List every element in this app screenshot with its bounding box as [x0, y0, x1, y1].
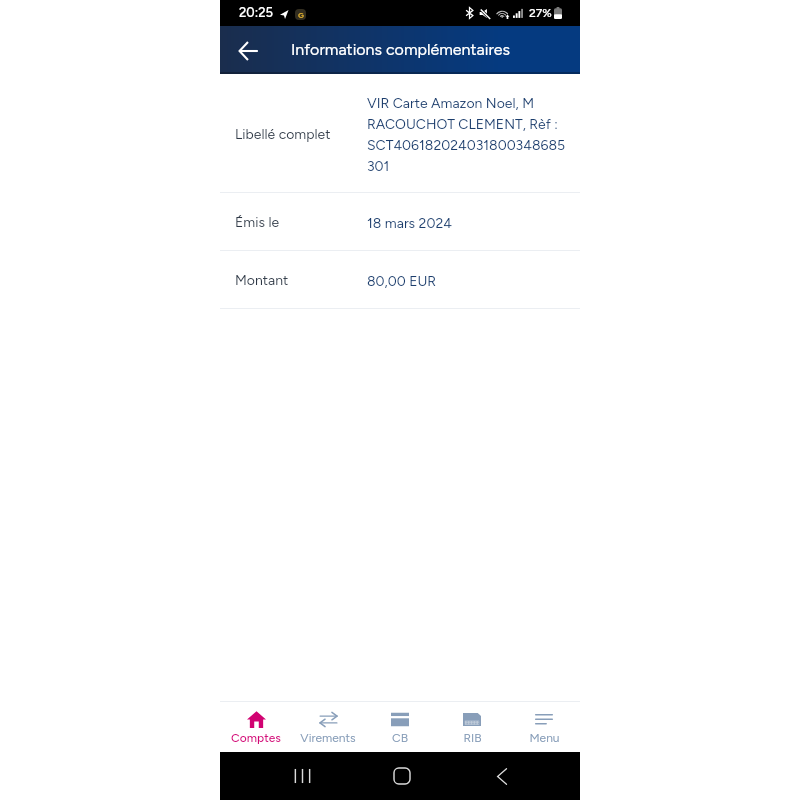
button[interactable]: Comptes: [220, 702, 292, 752]
staticText: Comptes: [231, 731, 281, 745]
button[interactable]: Retour: [452, 752, 552, 800]
staticText: 20:25: [239, 5, 273, 21]
staticText: 301: [367, 158, 390, 175]
button[interactable]: Montant: [220, 251, 580, 308]
button[interactable]: CB: [364, 702, 436, 752]
button[interactable]: Virements: [292, 702, 364, 752]
staticText: 80,00 EUR: [367, 273, 437, 290]
staticText: G: [298, 10, 304, 20]
staticText: RIB: [463, 731, 482, 745]
staticText: 18 mars 2024: [367, 215, 452, 232]
button[interactable]: Émis le: [220, 193, 580, 250]
staticText: Virements: [300, 731, 356, 745]
button[interactable]: Menu: [508, 702, 580, 752]
staticText: SCT406182024031800348685: [367, 137, 566, 154]
button[interactable]: Accueil: [352, 752, 452, 800]
button[interactable]: Applications récentes: [252, 752, 352, 800]
button[interactable]: Retour: [228, 30, 268, 70]
staticText: Émis le: [235, 214, 367, 231]
staticText: Libellé complet: [235, 126, 367, 143]
staticText: Informations complémentaires: [291, 40, 510, 59]
staticText: RACOUCHOT CLEMENT, Rèf :: [367, 116, 558, 133]
staticText: Montant: [235, 272, 367, 289]
staticText: Menu: [529, 731, 560, 745]
staticText: CB: [392, 731, 408, 745]
button[interactable]: RIB: [436, 702, 508, 752]
button[interactable]: Libellé complet: [220, 74, 580, 192]
staticText: VIR Carte Amazon Noel, M: [367, 95, 534, 112]
staticText: 27%: [529, 6, 552, 20]
